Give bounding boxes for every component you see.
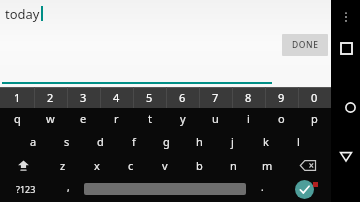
staticText: v [162, 158, 168, 173]
button[interactable]: d [84, 131, 117, 154]
button[interactable]: 9 [265, 87, 298, 108]
staticText: w [46, 111, 55, 126]
staticText: t [148, 111, 152, 126]
button[interactable]: i [232, 108, 265, 131]
button[interactable]: e [67, 108, 100, 131]
button[interactable]: c [114, 154, 148, 177]
button[interactable]: q [0, 108, 34, 131]
button[interactable]: 8 [232, 87, 265, 108]
button[interactable]: 7 [199, 87, 232, 108]
staticText: today [5, 5, 40, 23]
button[interactable]: a [16, 131, 50, 154]
staticText: f [132, 134, 136, 149]
staticText: 2 [47, 90, 54, 105]
button[interactable]: . [246, 177, 278, 201]
button[interactable]: k [249, 131, 282, 154]
button[interactable]: s [50, 131, 84, 154]
button[interactable]: 5 [133, 87, 166, 108]
staticText: k [263, 134, 269, 149]
staticText: h [196, 134, 203, 149]
staticText: n [230, 158, 237, 173]
button[interactable]: ?123 [0, 177, 52, 201]
button[interactable]: m [250, 154, 284, 177]
button[interactable]: Recent apps [334, 36, 358, 60]
staticText: y [180, 111, 186, 126]
staticText: , [67, 180, 70, 194]
staticText: s [64, 134, 70, 149]
staticText: 8 [245, 90, 252, 105]
staticText: m [262, 158, 273, 173]
button[interactable]: Enter [278, 177, 331, 201]
staticText: ?123 [16, 183, 36, 195]
button[interactable]: DONE [282, 34, 328, 56]
staticText: c [128, 158, 134, 173]
button[interactable]: t [133, 108, 166, 131]
button[interactable] [84, 177, 246, 201]
button[interactable]: o [265, 108, 298, 131]
staticText: 6 [179, 90, 186, 105]
staticText: z [60, 158, 66, 173]
staticText: x [94, 158, 100, 173]
staticText: j [231, 134, 234, 149]
staticText: d [97, 134, 104, 149]
button[interactable]: 0 [298, 87, 331, 108]
staticText: . [261, 180, 264, 194]
staticText: DONE [292, 39, 319, 51]
staticText: r [114, 111, 119, 126]
staticText: 5 [146, 90, 153, 105]
button[interactable]: Home [339, 96, 360, 118]
button[interactable]: p [298, 108, 331, 131]
button[interactable]: l [282, 131, 315, 154]
button[interactable]: 4 [100, 87, 133, 108]
staticText: p [311, 111, 318, 126]
staticText: 4 [113, 90, 120, 105]
staticText: a [30, 134, 37, 149]
button[interactable]: , [52, 177, 84, 201]
staticText: e [80, 111, 87, 126]
staticText: 1 [14, 90, 21, 105]
staticText: 9 [278, 90, 285, 105]
button[interactable]: u [199, 108, 232, 131]
staticText: 7 [212, 90, 219, 105]
button[interactable]: g [150, 131, 183, 154]
staticText: o [278, 111, 285, 126]
button[interactable]: r [100, 108, 133, 131]
button[interactable]: n [216, 154, 250, 177]
button[interactable]: Back [334, 144, 358, 168]
button[interactable]: j [216, 131, 249, 154]
button[interactable]: Backspace [284, 154, 331, 177]
staticText: b [196, 158, 203, 173]
staticText: q [14, 111, 21, 126]
button[interactable]: 1 [0, 87, 34, 108]
button[interactable]: w [34, 108, 67, 131]
button[interactable]: b [182, 154, 216, 177]
button[interactable]: Shift [0, 154, 46, 177]
button[interactable]: 3 [67, 87, 100, 108]
button[interactable]: 6 [166, 87, 199, 108]
staticText: u [212, 111, 219, 126]
staticText: i [247, 111, 250, 126]
button[interactable]: y [166, 108, 199, 131]
button[interactable]: v [148, 154, 182, 177]
button[interactable]: f [117, 131, 150, 154]
button[interactable]: More options [335, 6, 357, 28]
button[interactable]: z [46, 154, 80, 177]
staticText: g [163, 134, 170, 149]
button[interactable]: 2 [34, 87, 67, 108]
staticText: 3 [80, 90, 87, 105]
staticText: l [297, 134, 300, 149]
button[interactable]: x [80, 154, 114, 177]
staticText: 0 [311, 90, 318, 105]
button[interactable]: h [183, 131, 216, 154]
